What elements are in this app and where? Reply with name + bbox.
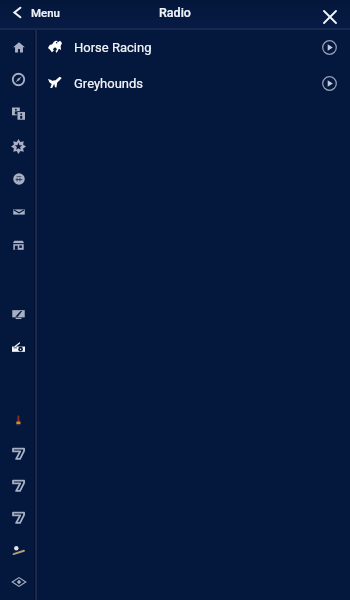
button[interactable]: Seven bbox=[0, 503, 37, 531]
button[interactable]: Shop bbox=[0, 231, 37, 259]
button[interactable]: Games bbox=[0, 99, 37, 127]
button[interactable]: Play Greyhounds bbox=[317, 71, 341, 95]
button[interactable]: Seven bbox=[0, 439, 37, 467]
button[interactable]: Close bbox=[316, 3, 343, 30]
staticText: Greyhounds bbox=[74, 76, 144, 91]
button[interactable]: Eye bbox=[0, 568, 37, 596]
staticText: Radio bbox=[159, 5, 191, 20]
button[interactable]: Greyhounds bbox=[37, 65, 350, 101]
button[interactable]: Cricket bbox=[0, 536, 37, 564]
staticText: Horse Racing bbox=[74, 40, 152, 55]
button[interactable]: Sports bbox=[0, 165, 37, 193]
button[interactable]: Seven bbox=[0, 471, 37, 499]
button[interactable]: Mail bbox=[0, 198, 37, 226]
button[interactable]: Live bbox=[0, 65, 37, 93]
button[interactable]: Play Horse Racing bbox=[317, 35, 341, 59]
button[interactable]: Home bbox=[0, 33, 37, 61]
button[interactable]: Settings bbox=[0, 132, 37, 160]
button[interactable]: Menu bbox=[0, 3, 69, 22]
staticText: Menu bbox=[31, 6, 61, 19]
button[interactable]: TV bbox=[0, 300, 37, 328]
button[interactable]: Torch bbox=[0, 406, 37, 434]
button[interactable]: Radio bbox=[0, 334, 37, 362]
button[interactable]: Horse Racing bbox=[37, 29, 350, 65]
